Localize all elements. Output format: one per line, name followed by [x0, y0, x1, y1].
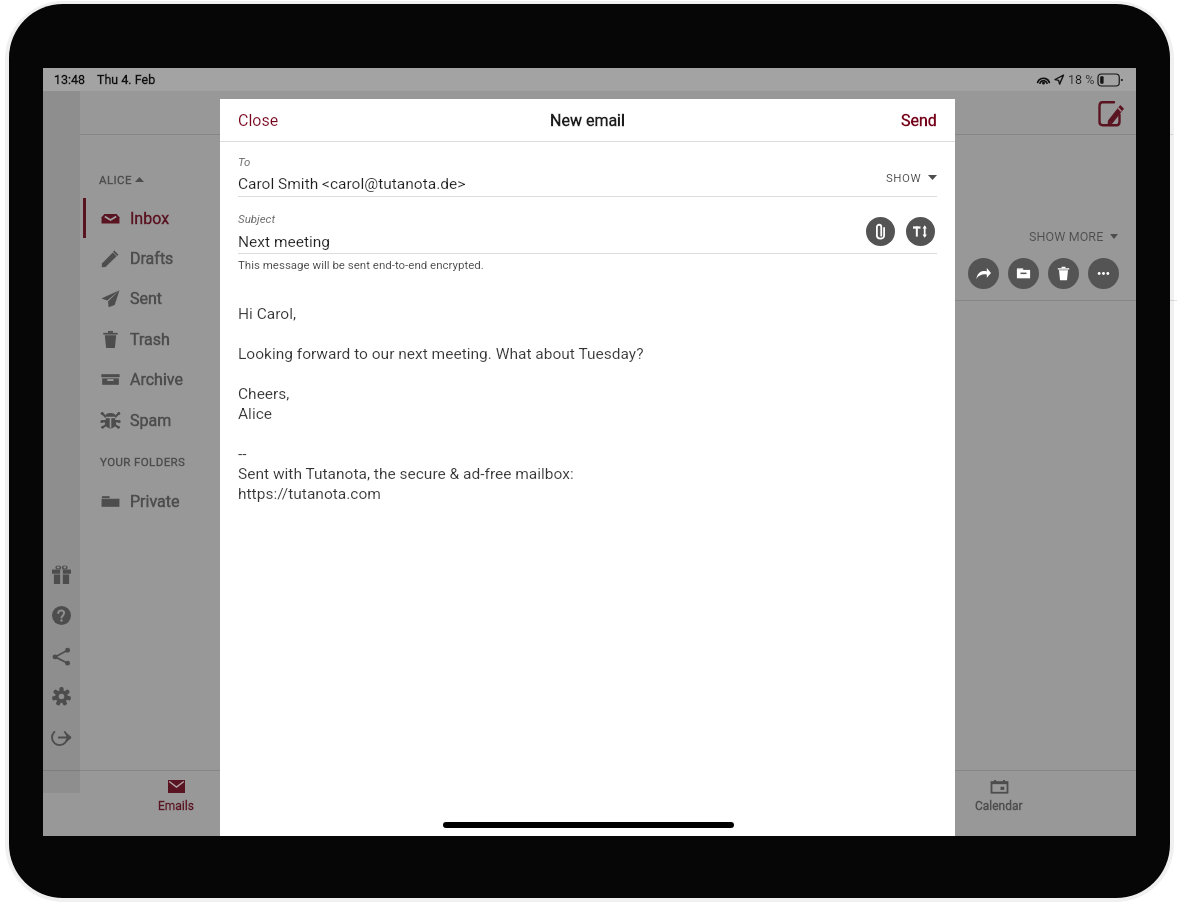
button[interactable]: Delete	[1048, 258, 1079, 289]
staticText: Alice	[238, 405, 272, 423]
staticText: Spam	[130, 411, 172, 430]
button[interactable]: Drafts	[80, 238, 220, 278]
button[interactable]: Calendar	[924, 771, 1074, 836]
button[interactable]: New email	[1094, 96, 1128, 130]
button[interactable]: Attach file	[866, 217, 895, 246]
button[interactable]: Inbox	[80, 198, 220, 238]
staticText: Drafts	[130, 249, 174, 268]
button[interactable]: ALICE	[99, 173, 144, 186]
staticText: Calendar	[975, 799, 1023, 813]
button[interactable]: Spam	[80, 400, 220, 440]
staticText: Cheers,	[238, 385, 290, 403]
staticText: Inbox	[130, 209, 170, 228]
button[interactable]: Log out	[45, 721, 78, 754]
staticText: Archive	[130, 370, 183, 389]
button[interactable]: Sent	[80, 278, 220, 318]
staticText: New email	[550, 111, 625, 130]
staticText: Send	[901, 111, 937, 130]
staticText: Emails	[158, 799, 194, 813]
button[interactable]: Trash	[80, 319, 220, 359]
button[interactable]: Emails	[101, 771, 251, 836]
button[interactable]: Close	[238, 111, 279, 130]
button[interactable]: Archive	[80, 359, 220, 399]
staticText: Sent with Tutanota, the secure & ad-free…	[238, 465, 574, 483]
staticText: Next meeting	[238, 233, 331, 251]
button[interactable]: Private	[80, 481, 220, 521]
staticText: 18 %	[1068, 72, 1095, 87]
button[interactable]: Send	[901, 111, 937, 130]
staticText: Looking forward to our next meeting. Wha…	[238, 345, 644, 363]
button[interactable]: Forward	[968, 258, 999, 289]
staticText: Close	[238, 111, 279, 130]
staticText: --	[238, 445, 247, 463]
button[interactable]: SHOW	[886, 171, 937, 184]
button[interactable]: Settings	[45, 680, 78, 713]
button[interactable]: SHOW MORE	[1029, 229, 1118, 244]
staticText: Thu 4. Feb	[97, 72, 156, 87]
staticText: ALICE	[99, 173, 132, 186]
staticText: Carol Smith <carol@tutanota.de>	[238, 175, 466, 193]
button[interactable]: More options	[1088, 258, 1119, 289]
staticText: To	[238, 155, 251, 168]
button[interactable]: Invite friends	[45, 558, 78, 591]
staticText: Hi Carol,	[238, 305, 296, 323]
staticText: Sent	[130, 289, 163, 308]
button[interactable]: Share	[45, 640, 78, 673]
button[interactable]: Move to folder	[1008, 258, 1039, 289]
staticText: Subject	[238, 212, 276, 225]
staticText: This message will be sent end-to-end enc…	[238, 258, 484, 271]
staticText: Private	[130, 492, 180, 511]
staticText: SHOW MORE	[1029, 229, 1104, 244]
staticText: 13:48	[54, 72, 86, 87]
staticText: YOUR FOLDERS	[100, 455, 186, 468]
button[interactable]: Help	[45, 599, 78, 632]
staticText: Trash	[130, 330, 170, 349]
staticText: https://tutanota.com	[238, 485, 381, 503]
staticText: SHOW	[886, 171, 922, 184]
button[interactable]: Formatting	[906, 217, 935, 246]
